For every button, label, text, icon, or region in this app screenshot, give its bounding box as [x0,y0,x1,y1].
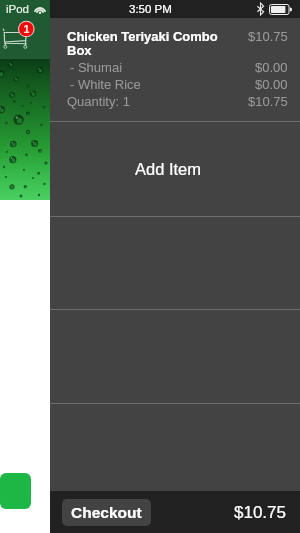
button[interactable]: Checkout [62,499,151,526]
staticText: $10.75 [234,503,286,522]
button[interactable]: Menu [0,473,31,509]
staticText: $10.75 [248,29,288,44]
staticText: Checkout [71,504,142,521]
button[interactable]: Cart [0,18,50,59]
button[interactable]: Add Item [50,122,300,216]
button[interactable]: Chicken Teriyaki Combo Box [50,18,300,121]
staticText: Chicken Teriyaki Combo Box [67,29,244,58]
staticText: - White Rice [70,77,255,92]
staticText: 3:50 PM [129,3,172,16]
staticText: 1 [23,24,30,35]
staticText: $0.00 [255,60,288,75]
staticText: Quantity: 1 [67,94,248,109]
staticText: $0.00 [255,77,288,92]
staticText: Add Item [135,160,202,178]
staticText: iPod [6,3,30,16]
staticText: - Shumai [70,60,255,75]
staticText: $10.75 [248,94,288,109]
